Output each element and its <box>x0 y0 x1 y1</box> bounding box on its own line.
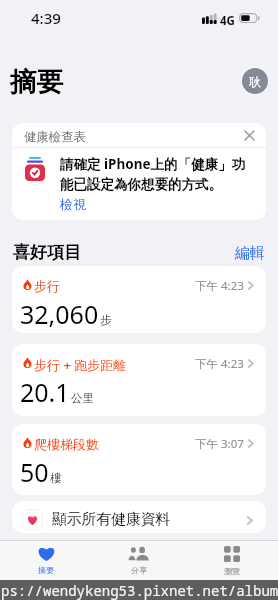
staticText: 步 <box>100 313 112 327</box>
button[interactable]: 瀏覽 <box>185 541 278 580</box>
button[interactable]: 顯示所有健康資料 <box>12 501 266 533</box>
button[interactable]: 摘要 <box>0 541 92 580</box>
button[interactable]: 編輯 <box>235 244 265 263</box>
staticText: 下午 4:23 <box>195 278 244 294</box>
staticText: 4G <box>220 13 235 29</box>
button[interactable]: 檢視 <box>60 196 86 212</box>
button[interactable]: Profile <box>242 68 268 94</box>
button[interactable]: 爬樓梯段數 <box>12 424 266 495</box>
staticText: 顯示所有健康資料 <box>52 510 171 529</box>
staticText: 請確定 iPhone上的「健康」功能已設定為你想要的方式。 <box>60 155 248 193</box>
button[interactable]: 分享 <box>92 541 185 580</box>
staticText: ps://wendykeng53.pixnet.net/album <box>1 581 278 600</box>
staticText: 摘要 <box>10 65 63 98</box>
staticText: 健康檢查表 <box>24 129 86 144</box>
staticText: 步行 + 跑步距離 <box>34 356 127 374</box>
button[interactable]: 步行 <box>12 266 266 333</box>
staticText: 下午 3:07 <box>195 436 244 452</box>
staticText: 分享 <box>131 565 147 575</box>
staticText: 摘要 <box>38 565 54 575</box>
staticText: 32,060 <box>20 297 99 331</box>
button[interactable]: 步行 + 跑步距離 <box>12 344 266 416</box>
staticText: 步行 <box>34 278 60 294</box>
button[interactable]: Dismiss <box>244 130 255 141</box>
staticText: 耿 <box>249 74 261 89</box>
staticText: 下午 4:23 <box>195 356 244 372</box>
button[interactable]: 健康檢查表 <box>12 123 266 220</box>
staticText: 公里 <box>71 391 94 405</box>
staticText: 4:39 <box>31 8 61 28</box>
staticText: 爬樓梯段數 <box>34 436 99 452</box>
staticText: 樓 <box>50 471 62 485</box>
staticText: 20.1 <box>20 375 70 409</box>
staticText: 50 <box>20 455 49 489</box>
staticText: 喜好項目 <box>13 242 81 263</box>
staticText: 瀏覽 <box>224 566 240 576</box>
